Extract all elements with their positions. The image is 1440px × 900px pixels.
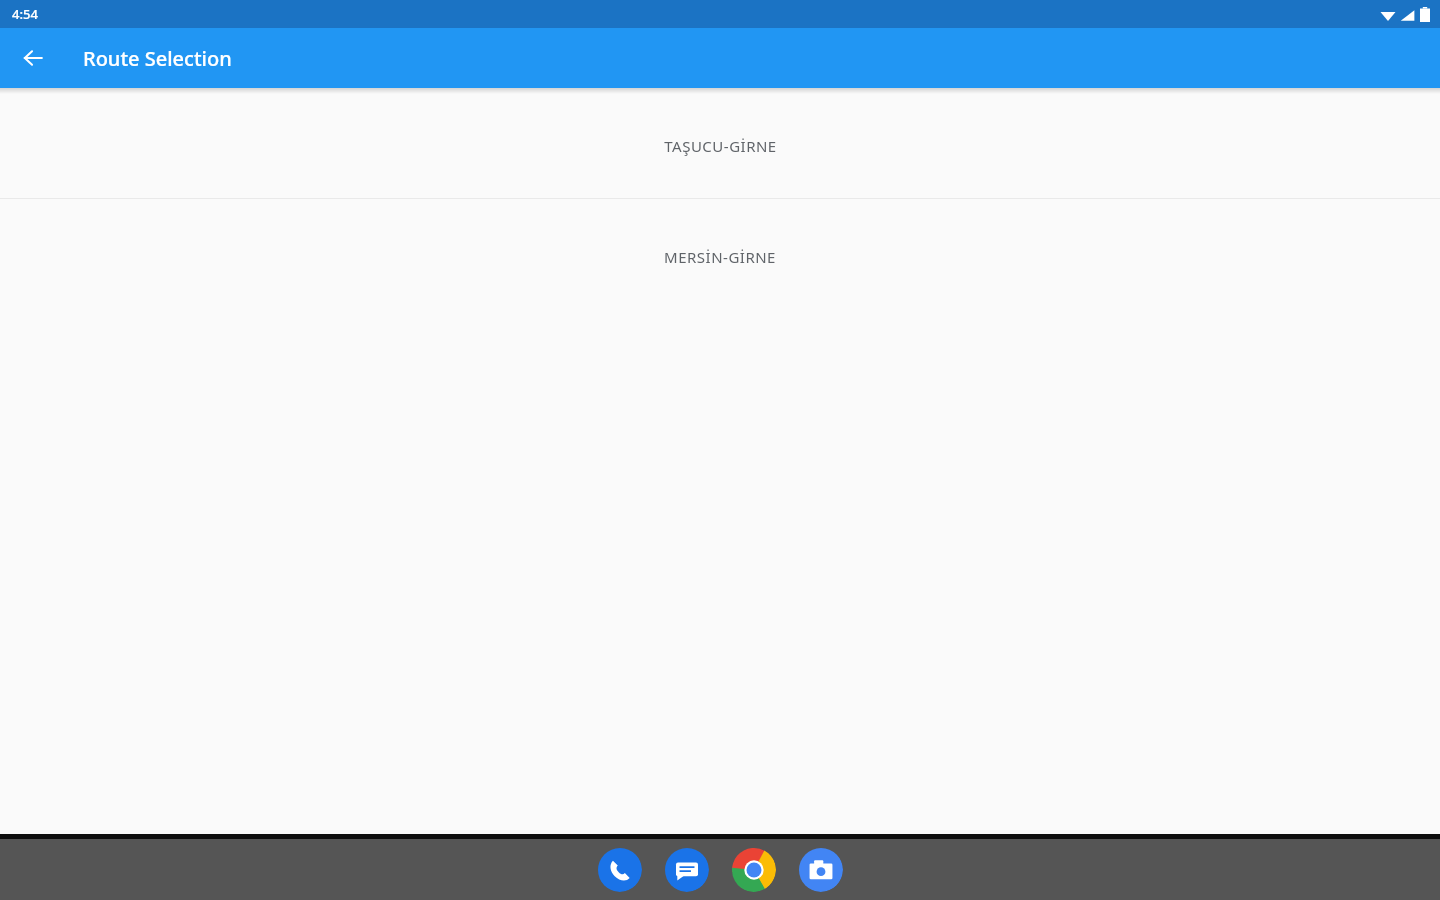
button[interactable]: Phone [597, 847, 642, 892]
button[interactable]: Camera [798, 847, 843, 892]
button[interactable]: TAŞUCU-GİRNE [0, 94, 1440, 198]
button[interactable]: Messages [664, 847, 709, 892]
button[interactable]: Chrome [731, 847, 776, 892]
button[interactable]: Back [9, 34, 57, 82]
staticText: TAŞUCU-GİRNE [664, 136, 777, 156]
staticText: 4:54 [12, 5, 38, 23]
staticText: MERSİN-GİRNE [664, 247, 776, 267]
button[interactable]: MERSİN-GİRNE [0, 199, 1440, 315]
staticText: Route Selection [83, 45, 232, 72]
